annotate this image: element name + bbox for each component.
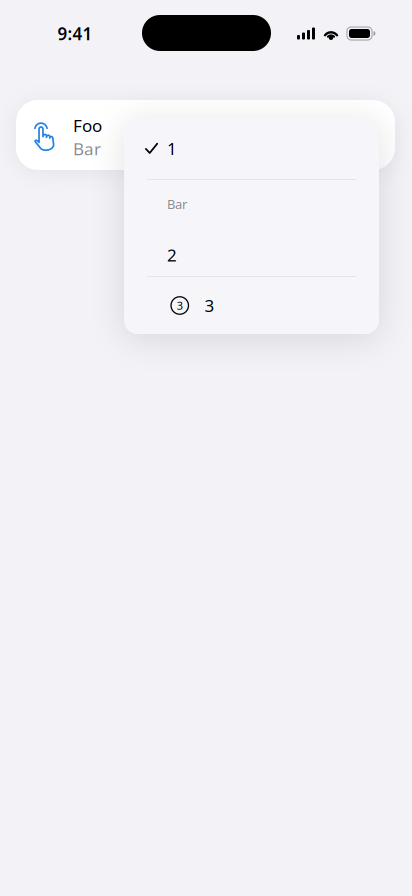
staticText: 3 — [204, 294, 214, 317]
button[interactable]: 2 — [124, 213, 379, 275]
staticText: Foo — [73, 114, 102, 137]
staticText: Bar — [73, 137, 101, 160]
button[interactable]: Foo — [16, 100, 395, 170]
button[interactable]: 1 — [124, 118, 379, 179]
staticText: 1 — [167, 137, 177, 160]
staticText: 3 — [177, 298, 183, 313]
staticText: Bar — [167, 195, 187, 213]
staticText: 9:41 — [57, 22, 92, 45]
staticText: 2 — [167, 243, 177, 267]
button[interactable]: 3 — [124, 277, 379, 334]
